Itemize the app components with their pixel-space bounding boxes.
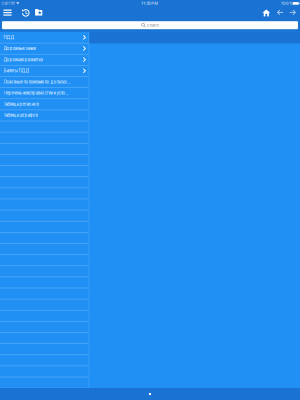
button[interactable] [0,254,88,265]
button[interactable]: Билеты ПДД [0,65,88,76]
button[interactable]: Menu [0,6,14,19]
button[interactable] [0,165,88,176]
button[interactable]: Home [259,6,273,19]
button[interactable] [0,332,88,343]
button[interactable] [0,265,88,277]
button[interactable]: Дорожная разметка [0,54,88,65]
button[interactable] [0,377,88,388]
staticText: Carrier [1,1,15,6]
button[interactable] [0,154,88,165]
button[interactable] [0,143,88,154]
button[interactable]: Перечень неисправностей и усло... [0,87,88,99]
button[interactable]: Таблица штрафов [0,110,88,121]
button[interactable]: Search [2,21,298,29]
button[interactable] [0,355,88,366]
button[interactable] [0,210,88,221]
button[interactable]: Bookmarks [32,6,46,19]
staticText: Таблица штрафов [3,113,37,118]
button[interactable]: Дорожные знаки [0,43,88,54]
staticText: ПДД [3,35,13,40]
staticText: 100% [281,1,293,6]
staticText: Перечень неисправностей и усло... [3,90,68,96]
staticText: 11:35 PM [141,1,158,6]
button[interactable] [0,366,88,377]
button[interactable] [0,288,88,299]
staticText: Билеты ПДД [3,68,28,73]
button[interactable] [0,221,88,232]
button[interactable] [0,277,88,288]
button[interactable]: Forward [286,6,299,19]
button[interactable]: Back [274,6,287,19]
staticText: Дорожная разметка [3,57,42,62]
button[interactable] [0,188,88,199]
staticText: Дорожные знаки [3,46,35,51]
button[interactable] [0,199,88,210]
button[interactable]: Основные положения по допуску ... [0,76,88,87]
button[interactable] [0,310,88,321]
button[interactable]: ПДД [0,32,88,43]
staticText: Search [147,23,159,28]
button[interactable] [0,321,88,332]
button[interactable] [0,132,88,143]
staticText: Таблица регионов [3,102,38,107]
button[interactable] [0,232,88,243]
button[interactable] [0,243,88,254]
button[interactable] [0,176,88,188]
button[interactable] [0,299,88,310]
button[interactable]: History [19,6,33,19]
staticText: Основные положения по допуску ... [3,79,70,84]
button[interactable] [0,343,88,354]
button[interactable] [0,121,88,132]
button[interactable]: Таблица регионов [0,99,88,110]
